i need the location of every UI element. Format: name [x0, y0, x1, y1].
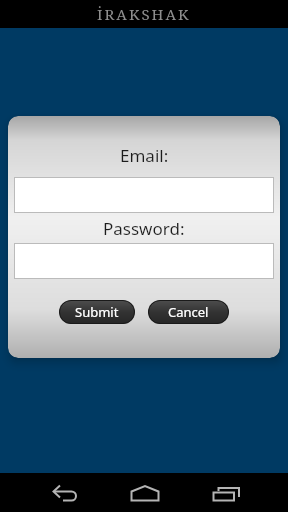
staticText: Submit [75, 303, 119, 321]
button[interactable] [14, 243, 274, 279]
button[interactable] [185, 473, 266, 512]
staticText: Cancel [168, 303, 209, 321]
staticText: İRAKSHAK [97, 4, 191, 24]
staticText: Email: [120, 144, 169, 167]
button[interactable]: Cancel [148, 300, 229, 324]
button[interactable] [104, 473, 185, 512]
button[interactable] [23, 473, 104, 512]
staticText: Password: [103, 217, 185, 240]
button[interactable] [14, 177, 274, 213]
button[interactable]: Submit [59, 300, 135, 324]
